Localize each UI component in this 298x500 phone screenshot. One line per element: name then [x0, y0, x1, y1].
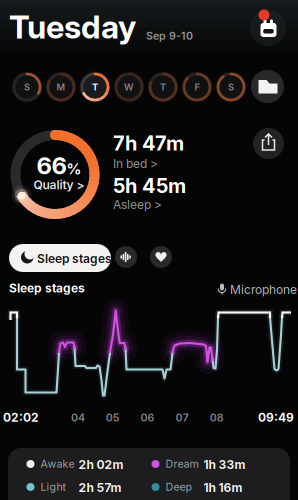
staticText: Sep 9-10	[146, 29, 193, 42]
staticText: W	[124, 81, 134, 92]
staticText: Asleep >	[113, 197, 162, 212]
staticText: S	[24, 81, 30, 92]
staticText: Awake	[40, 457, 74, 470]
staticText: 7h 47m	[113, 131, 184, 155]
staticText: Deep	[165, 480, 192, 493]
staticText: %	[66, 160, 81, 177]
staticText: Sleep stages	[9, 281, 85, 295]
staticText: 07	[176, 411, 189, 424]
staticText: 06	[140, 411, 154, 424]
staticText: In bed >	[113, 156, 158, 171]
staticText: T	[92, 81, 98, 92]
staticText: 04	[71, 411, 85, 424]
staticText: 02:02	[3, 410, 39, 425]
staticText: 66	[36, 151, 66, 180]
staticText: S	[228, 81, 234, 92]
staticText: Microphone	[230, 282, 297, 297]
staticText: 5h 45m	[113, 174, 186, 198]
staticText: 1h 33m	[203, 457, 245, 472]
staticText: M	[56, 81, 65, 92]
staticText: Sleep stages	[37, 251, 112, 266]
staticText: Tuesday	[9, 8, 136, 46]
staticText: F	[194, 81, 199, 92]
staticText: 2h 57m	[78, 480, 121, 495]
staticText: 2h 02m	[78, 457, 123, 472]
staticText: Light	[40, 480, 65, 493]
staticText: T	[160, 81, 166, 92]
staticText: Quality >	[33, 178, 84, 192]
staticText: 1h 16m	[203, 480, 242, 495]
staticText: 09:49	[258, 410, 294, 425]
staticText: Dream	[165, 457, 198, 470]
staticText: 08	[210, 411, 224, 424]
staticText: 05	[106, 411, 120, 424]
